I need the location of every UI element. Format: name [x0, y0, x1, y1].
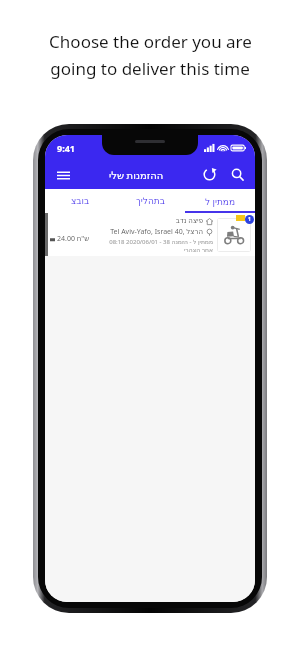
- staticText: Tel Aviv-Yafo, Israel 40, הרצל: [110, 227, 203, 237]
- button[interactable]: ממתין ל: [185, 189, 255, 213]
- staticText: בתהליך: [136, 196, 165, 206]
- staticText: 1: [248, 216, 251, 223]
- staticText: 24.00 ש"ח: [57, 234, 90, 244]
- staticText: ההזמנות שלי: [109, 168, 164, 182]
- button[interactable]: Menu: [52, 164, 74, 186]
- button[interactable]: בובצ: [45, 189, 115, 213]
- staticText: ממתין ל: [205, 195, 236, 207]
- staticText: בובצ: [71, 196, 90, 206]
- button[interactable]: בתהליך: [115, 189, 185, 213]
- staticText: 9:41: [57, 142, 75, 154]
- staticText: פיצה נדב: [175, 216, 203, 226]
- staticText: Choose the order you are: [49, 30, 252, 53]
- button[interactable]: Refresh: [199, 164, 220, 185]
- button[interactable]: Search: [227, 164, 248, 185]
- staticText: ממתין ל - הזמנה 38 - 2020/06/01 08:18 אח…: [102, 238, 213, 253]
- button[interactable]: 24.00 ש"ח: [45, 213, 255, 256]
- staticText: going to deliver this time: [50, 57, 250, 80]
